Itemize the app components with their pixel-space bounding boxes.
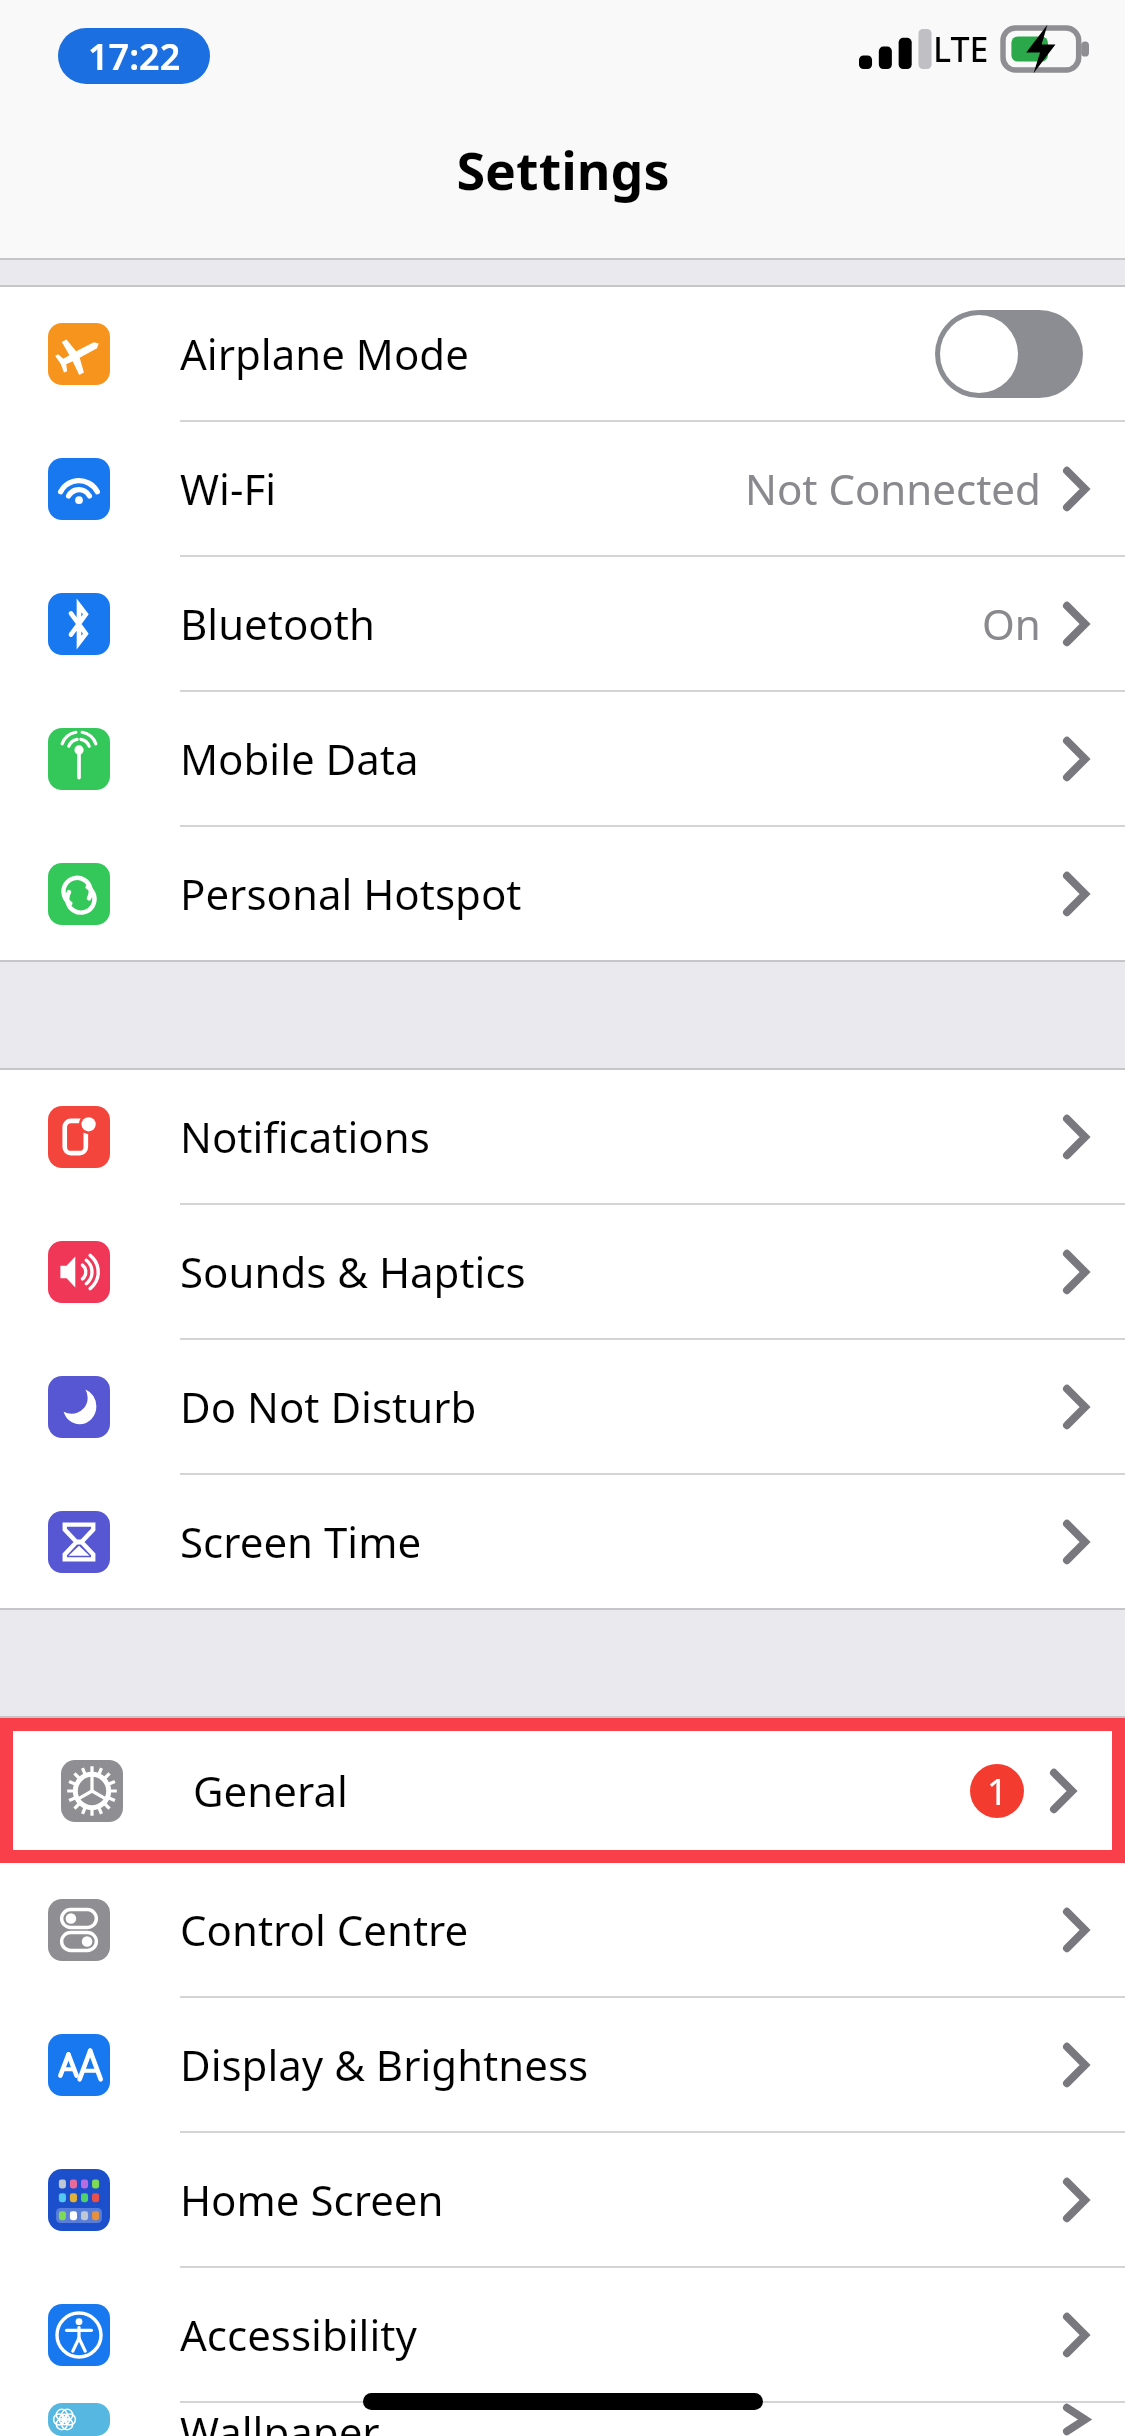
button[interactable]: Control Centre bbox=[0, 1863, 1125, 1996]
staticText: Home Screen bbox=[180, 2171, 444, 2228]
staticText: Wallpaper bbox=[180, 2403, 380, 2436]
staticText: Not Connected bbox=[745, 460, 1041, 517]
staticText: LTE bbox=[933, 26, 989, 72]
staticText: Mobile Data bbox=[180, 730, 419, 787]
staticText: Sounds & Haptics bbox=[180, 1243, 526, 1300]
button[interactable]: Home Screen bbox=[0, 2133, 1125, 2266]
staticText: Personal Hotspot bbox=[180, 865, 522, 922]
button[interactable]: Wi-Fi bbox=[0, 422, 1125, 555]
button[interactable]: Do Not Disturb bbox=[0, 1340, 1125, 1473]
button[interactable]: Airplane Mode bbox=[0, 287, 1125, 420]
staticText: Airplane Mode bbox=[180, 325, 469, 382]
staticText: 17:22 bbox=[88, 32, 181, 81]
button[interactable]: Bluetooth bbox=[0, 557, 1125, 690]
staticText: Accessibility bbox=[180, 2306, 417, 2363]
button[interactable]: Sounds & Haptics bbox=[0, 1205, 1125, 1338]
staticText: Display & Brightness bbox=[180, 2036, 589, 2093]
staticText: General bbox=[193, 1762, 348, 1819]
staticText: Control Centre bbox=[180, 1901, 469, 1958]
button[interactable]: Personal Hotspot bbox=[0, 827, 1125, 960]
button[interactable]: Screen Time bbox=[0, 1475, 1125, 1608]
button[interactable]: General bbox=[13, 1731, 1112, 1850]
button[interactable]: Wallpaper bbox=[0, 2403, 1125, 2436]
staticText: 1 bbox=[987, 1767, 1008, 1816]
staticText: Screen Time bbox=[180, 1513, 422, 1570]
button[interactable]: Airplane Mode toggle bbox=[935, 310, 1083, 398]
staticText: Settings bbox=[456, 134, 670, 205]
staticText: Bluetooth bbox=[180, 595, 375, 652]
button[interactable]: Notifications bbox=[0, 1070, 1125, 1203]
staticText: On bbox=[982, 595, 1041, 652]
button[interactable]: Mobile Data bbox=[0, 692, 1125, 825]
button[interactable]: Display & Brightness bbox=[0, 1998, 1125, 2131]
staticText: Notifications bbox=[180, 1108, 430, 1165]
staticText: Do Not Disturb bbox=[180, 1378, 477, 1435]
button[interactable]: Accessibility bbox=[0, 2268, 1125, 2401]
staticText: Wi-Fi bbox=[180, 460, 277, 517]
